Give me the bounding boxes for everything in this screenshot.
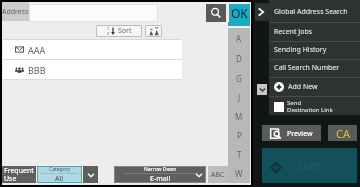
button[interactable]: Recent Jobs [269, 22, 360, 41]
button[interactable]: Call Search Number [269, 59, 360, 77]
button[interactable]: Address [2, 2, 29, 21]
button[interactable]: Expand menu [255, 3, 269, 21]
button[interactable]: T [228, 145, 250, 164]
staticText: Sort [118, 26, 132, 36]
button[interactable]: Global Address Search [269, 1, 360, 22]
button[interactable]: CA [328, 125, 357, 141]
staticText: E-mail [150, 174, 171, 183]
staticText: Recent Jobs [274, 27, 313, 37]
button[interactable]: Add New [269, 77, 360, 96]
button[interactable]: Narrow Down [114, 166, 206, 183]
button[interactable]: Sending History [269, 41, 360, 59]
button[interactable]: BBB [3, 60, 182, 79]
staticText: Call Search Number [274, 63, 340, 73]
button[interactable]: Frequent Use [2, 166, 36, 183]
button[interactable]: 1 [96, 25, 142, 37]
staticText: BBB [28, 64, 46, 76]
staticText: Preview [287, 129, 313, 139]
staticText: Send Destination Link [287, 99, 333, 114]
button[interactable]: D [228, 48, 250, 68]
staticText: All [55, 174, 64, 183]
staticText: Category [49, 166, 71, 173]
button[interactable]: Send Destination Link [269, 97, 360, 115]
staticText: G [236, 73, 242, 84]
staticText: Start [298, 159, 321, 173]
staticText: 2 [107, 31, 110, 36]
staticText: Add New [288, 82, 318, 92]
button[interactable]: Change name order [145, 25, 162, 37]
staticText: T [237, 149, 242, 160]
staticText: D [236, 53, 242, 64]
button[interactable]: Preview [262, 125, 321, 141]
button[interactable]: M [228, 107, 250, 126]
staticText: P [237, 130, 242, 141]
staticText: CA [336, 126, 350, 141]
button[interactable]: Search [206, 4, 226, 22]
button[interactable]: A [228, 28, 250, 48]
button[interactable]: Open Category [83, 166, 98, 183]
staticText: M [235, 111, 243, 122]
staticText: Narrow Down [144, 166, 177, 173]
staticText: Address [2, 7, 29, 17]
staticText: ABC [211, 170, 225, 180]
button[interactable]: AAA [3, 40, 182, 59]
button[interactable]: Start [262, 148, 357, 183]
staticText: OK [231, 5, 248, 21]
button[interactable]: G [228, 68, 250, 88]
staticText: Frequent Use [4, 166, 34, 183]
staticText: W [235, 168, 243, 179]
button[interactable]: ABC [208, 166, 228, 183]
staticText: J [238, 92, 241, 103]
staticText: 1 [107, 26, 110, 31]
button[interactable]: OK [229, 4, 250, 22]
button[interactable]: P [228, 126, 250, 145]
button[interactable]: W [228, 164, 250, 183]
button[interactable]: J [228, 88, 250, 107]
staticText: AAA [28, 44, 46, 56]
button[interactable]: Category [37, 166, 82, 183]
button[interactable] [29, 4, 158, 22]
staticText: Sending History [274, 45, 327, 55]
staticText: Global Address Search [274, 7, 348, 17]
staticText: A [236, 33, 242, 44]
button[interactable]: Collapse [257, 84, 267, 95]
